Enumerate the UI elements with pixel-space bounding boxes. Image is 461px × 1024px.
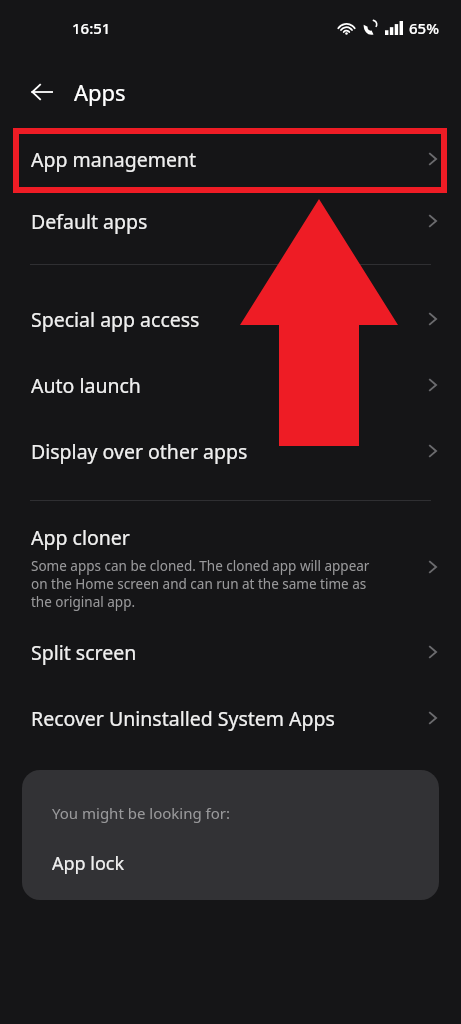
staticText: App cloner: [31, 524, 130, 551]
button[interactable]: Auto launch: [0, 352, 461, 418]
staticText: Special app access: [31, 306, 200, 333]
staticText: Default apps: [31, 208, 148, 235]
staticText: App lock: [52, 851, 125, 876]
button[interactable]: Default apps: [0, 190, 461, 252]
button[interactable]: Recover Uninstalled System Apps: [0, 685, 461, 751]
staticText: 65%: [409, 18, 439, 38]
staticText: Some apps can be cloned. The cloned app …: [31, 557, 370, 575]
button[interactable]: App management: [0, 128, 461, 190]
staticText: Apps: [74, 77, 126, 107]
button[interactable]: You might be looking for:: [22, 770, 439, 900]
staticText: the original app.: [31, 593, 136, 611]
staticText: Split screen: [31, 639, 137, 666]
staticText: 16:51: [72, 18, 111, 38]
button[interactable]: Split screen: [0, 619, 461, 685]
staticText: on the Home screen and can run at the sa…: [31, 575, 367, 593]
staticText: Recover Uninstalled System Apps: [31, 705, 335, 732]
staticText: Display over other apps: [31, 438, 248, 465]
button[interactable]: App cloner: [0, 515, 461, 619]
staticText: Auto launch: [31, 372, 141, 399]
staticText: App management: [31, 146, 196, 173]
button[interactable]: Back: [20, 70, 64, 114]
staticText: You might be looking for:: [52, 803, 231, 823]
button[interactable]: Display over other apps: [0, 418, 461, 484]
button[interactable]: Special app access: [0, 286, 461, 352]
